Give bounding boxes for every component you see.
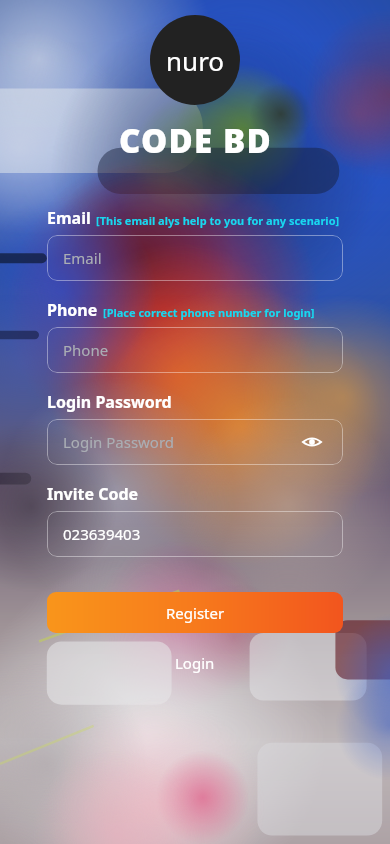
staticText: Phone — [47, 299, 98, 321]
staticText: nuro — [166, 43, 225, 78]
staticText: Register — [166, 603, 225, 623]
button[interactable]: Register — [47, 592, 343, 633]
button[interactable]: 023639403 — [47, 511, 343, 557]
staticText: Email — [63, 248, 102, 268]
button[interactable]: Show password — [297, 427, 327, 457]
staticText: Phone — [63, 340, 109, 360]
staticText: CODE BD — [119, 118, 272, 163]
staticText: 023639403 — [63, 524, 141, 544]
button[interactable]: Phone — [47, 327, 343, 373]
staticText: [Place correct phone number for login] — [103, 305, 315, 320]
staticText: Invite Code — [47, 483, 139, 505]
staticText: Email — [47, 207, 91, 229]
button[interactable]: Email — [47, 235, 343, 281]
staticText: Login Password — [47, 391, 172, 413]
button[interactable]: Login — [163, 649, 227, 677]
staticText: [This email alys help to you for any sce… — [96, 213, 340, 228]
button[interactable]: nuro logo — [150, 15, 240, 105]
staticText: Login Password — [63, 432, 175, 452]
button[interactable]: Login Password — [47, 419, 343, 465]
staticText: Login — [175, 653, 215, 673]
